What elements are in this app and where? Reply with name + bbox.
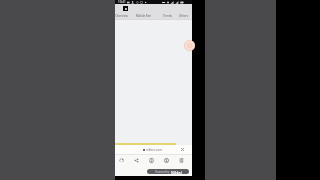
button[interactable]: Trends [160,13,175,19]
button[interactable]: Reload [115,155,128,165]
button[interactable]: Mobile Sites [136,13,151,19]
button[interactable]: App logo [123,6,128,11]
staticText: Trends [163,14,172,18]
staticText: nikkei.com [146,148,163,152]
staticText: Mobile Sites [136,14,151,18]
button[interactable]: Tabs [175,155,188,165]
staticText: Overview [115,14,128,18]
button[interactable]: Save page [145,155,158,165]
staticText: Nikkei [171,170,182,174]
button[interactable]: Overview [114,13,129,19]
staticText: 10:41 [118,0,126,4]
button[interactable]: Account [160,155,173,165]
button[interactable]: Chat bubble [184,40,195,51]
button[interactable]: Powered by [147,169,189,174]
button[interactable]: Share [130,155,143,165]
staticText: Others [179,14,188,18]
button[interactable]: Stop loading [180,147,185,152]
staticText: Powered by [155,170,170,174]
button[interactable]: Others [176,13,191,19]
